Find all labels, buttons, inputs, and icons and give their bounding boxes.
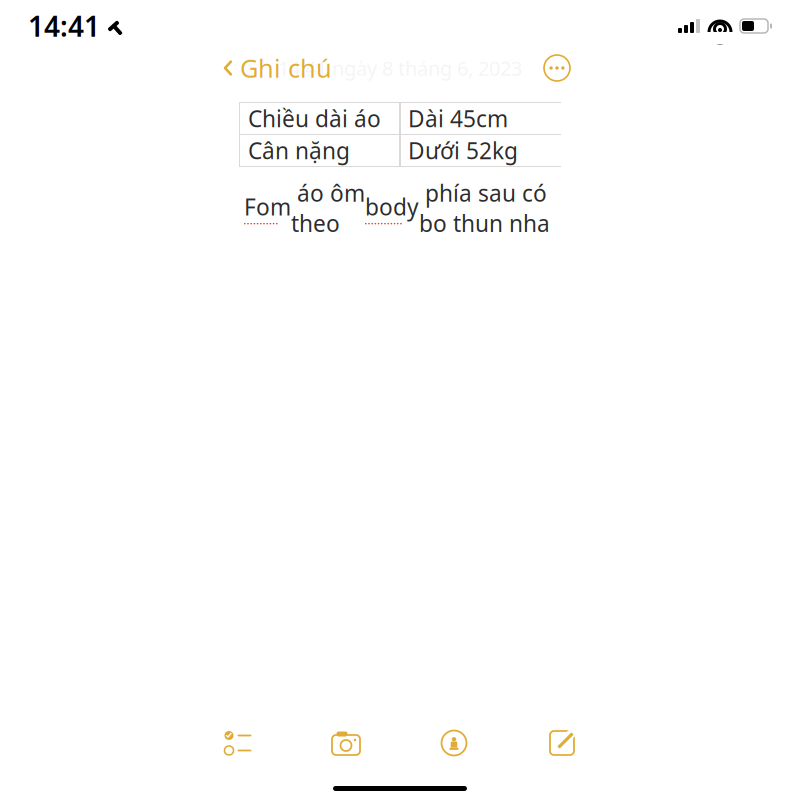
staticText: áo ôm theo [291,178,365,238]
staticText: Ghi chú [240,51,332,85]
button[interactable]: Ghi chú [222,45,332,91]
button[interactable]: More options [540,51,574,85]
staticText: Chiều dài áo [248,103,381,133]
staticText: Fom [244,192,291,222]
staticText: 14:41 ngày 8 tháng 6, 2023 [278,55,522,81]
button[interactable]: Markup [426,720,482,766]
staticText: Dưới 52kg [408,135,518,165]
staticText: phía sau có bo thun nha [419,178,550,238]
button[interactable]: Checklist [210,720,266,766]
staticText: 14:41 [28,7,100,45]
button[interactable]: New note [534,720,590,766]
staticText: body [365,192,419,222]
staticText: Dài 45cm [408,103,508,133]
button[interactable]: Camera [318,720,374,766]
staticText: Cân nặng [248,135,350,165]
